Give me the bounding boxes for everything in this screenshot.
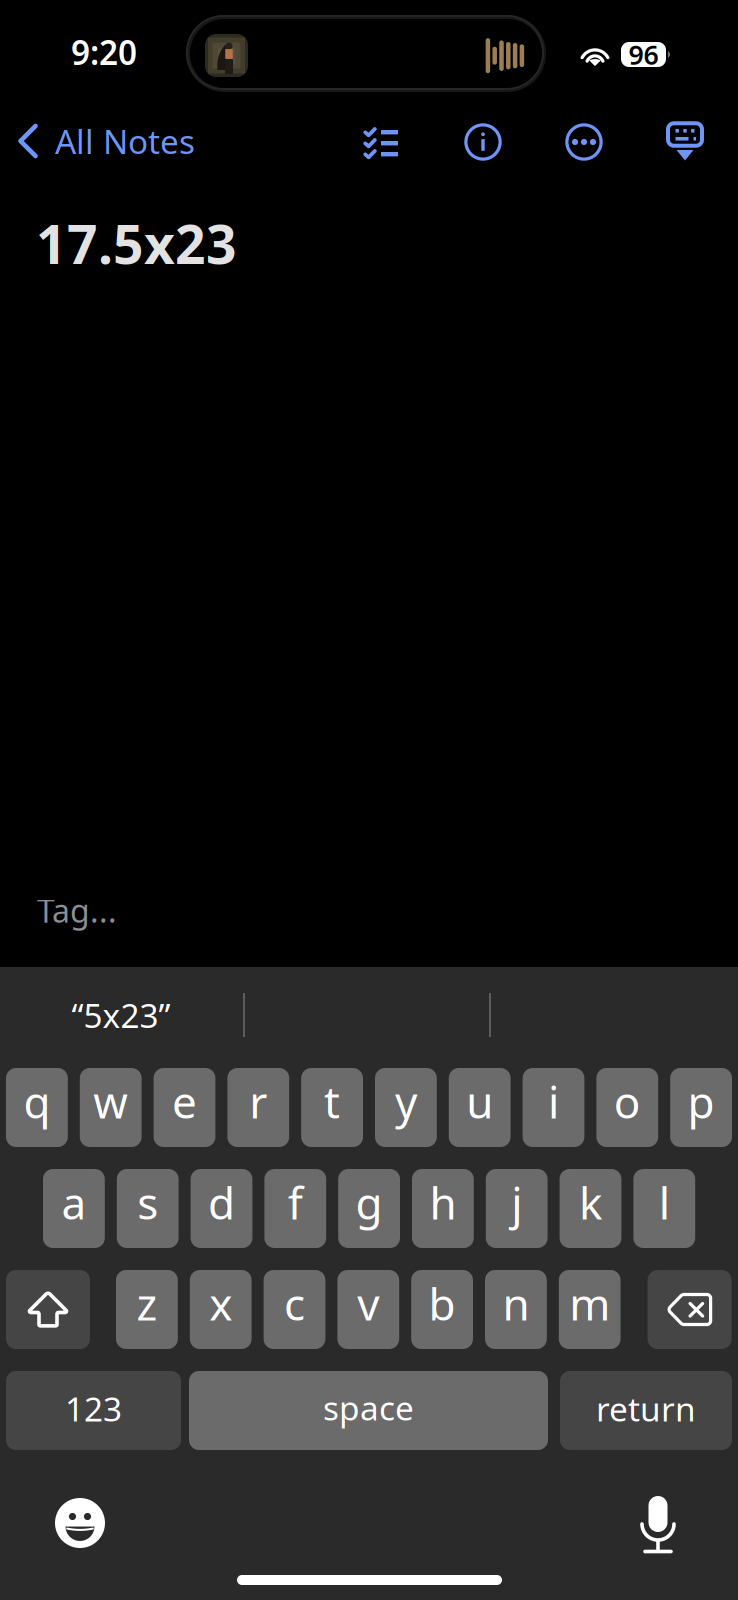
staticText: c	[284, 1274, 305, 1333]
staticText: g	[356, 1173, 383, 1232]
staticText: All Notes	[55, 119, 195, 163]
button[interactable]: y	[375, 1068, 437, 1147]
button[interactable]: j	[486, 1169, 548, 1248]
staticText: w	[93, 1072, 128, 1131]
staticText: 96	[628, 37, 658, 72]
button[interactable]: All Notes	[0, 110, 207, 172]
staticText: Tag...	[37, 889, 117, 931]
staticText: q	[23, 1072, 50, 1131]
button[interactable]: r	[227, 1068, 289, 1147]
staticText: i	[548, 1072, 559, 1131]
button[interactable]: d	[191, 1169, 252, 1248]
button[interactable]: b	[411, 1270, 473, 1349]
button[interactable]: Info	[451, 111, 515, 173]
button[interactable]: Emoji keyboard	[44, 1487, 116, 1559]
staticText: x	[209, 1274, 232, 1333]
staticText: 17.5x23	[36, 208, 237, 279]
button[interactable]: g	[338, 1169, 400, 1248]
button[interactable]: p	[670, 1068, 732, 1147]
button[interactable]: a	[43, 1169, 105, 1248]
staticText: j	[511, 1173, 522, 1232]
staticText: l	[659, 1173, 670, 1232]
button[interactable]: z	[116, 1270, 178, 1349]
staticText: d	[208, 1173, 235, 1232]
staticText: h	[429, 1173, 456, 1232]
button[interactable]: x	[190, 1270, 252, 1349]
staticText: a	[61, 1173, 86, 1232]
staticText: f	[288, 1173, 303, 1232]
staticText: t	[324, 1072, 340, 1131]
staticText: v	[357, 1274, 379, 1333]
button[interactable]: e	[154, 1068, 215, 1147]
button[interactable]: h	[412, 1169, 474, 1248]
button[interactable]: Second suggestion	[245, 967, 491, 1039]
staticText: b	[429, 1274, 456, 1333]
button[interactable]: l	[633, 1169, 695, 1248]
staticText: p	[688, 1072, 715, 1131]
staticText: y	[395, 1072, 417, 1131]
button[interactable]: “5x23”	[0, 967, 244, 1039]
button[interactable]: c	[264, 1270, 325, 1349]
button[interactable]: n	[485, 1270, 547, 1349]
button[interactable]: Checklist	[349, 111, 413, 173]
staticText: o	[614, 1072, 641, 1131]
button[interactable]: 123	[6, 1371, 181, 1450]
button[interactable]: m	[559, 1270, 621, 1349]
button[interactable]: v	[337, 1270, 399, 1349]
button[interactable]: 17.5x23	[0, 187, 738, 867]
button[interactable]: k	[560, 1169, 621, 1248]
button[interactable]: u	[449, 1068, 511, 1147]
staticText: 123	[65, 1386, 122, 1431]
staticText: m	[569, 1274, 610, 1333]
button[interactable]: o	[596, 1068, 658, 1147]
staticText: r	[249, 1072, 267, 1131]
button[interactable]: w	[80, 1068, 142, 1147]
button[interactable]: space	[189, 1371, 548, 1450]
button[interactable]: Tag...	[0, 867, 738, 947]
button[interactable]: More options	[552, 111, 616, 173]
button[interactable]: t	[301, 1068, 363, 1147]
staticText: return	[596, 1386, 696, 1431]
staticText: space	[323, 1385, 414, 1430]
button[interactable]: Delete	[648, 1270, 732, 1349]
staticText: e	[172, 1072, 197, 1131]
button[interactable]: Dictation	[622, 1486, 694, 1558]
button[interactable]: f	[264, 1169, 326, 1248]
button[interactable]: s	[117, 1169, 179, 1248]
button[interactable]: Hide Keyboard	[653, 111, 717, 173]
staticText: “5x23”	[71, 993, 170, 1037]
button[interactable]: return	[560, 1371, 732, 1450]
button[interactable]: i	[523, 1068, 584, 1147]
staticText: k	[579, 1173, 602, 1232]
staticText: u	[466, 1072, 493, 1131]
staticText: s	[137, 1173, 158, 1232]
staticText: 9:20	[71, 30, 137, 74]
staticText: n	[502, 1274, 529, 1333]
button[interactable]: Shift	[6, 1270, 90, 1349]
button[interactable]: q	[6, 1068, 68, 1147]
staticText: z	[136, 1274, 157, 1333]
